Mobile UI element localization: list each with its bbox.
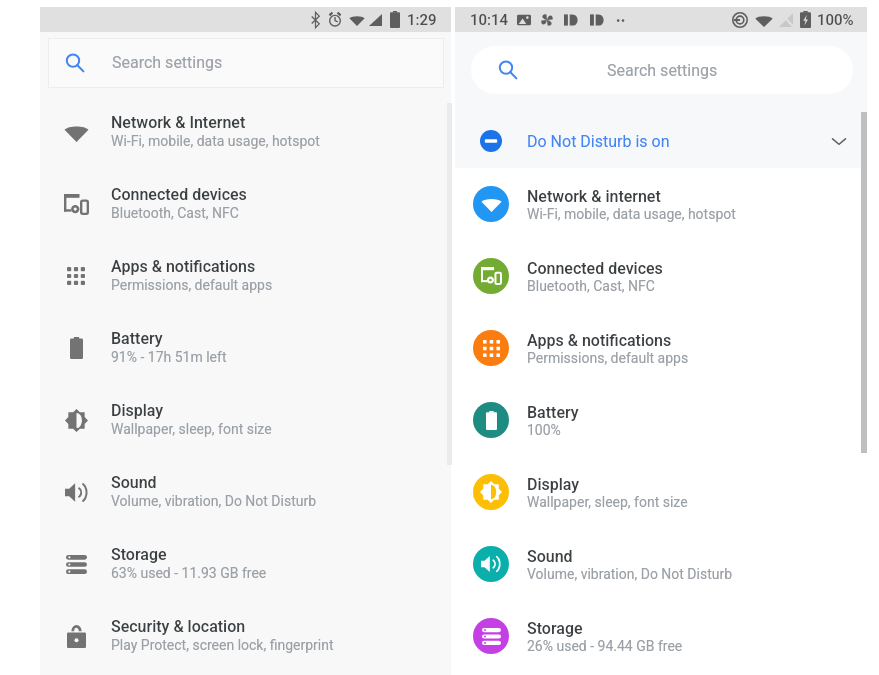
staticText: 100% — [527, 422, 561, 438]
button[interactable]: Battery — [40, 316, 451, 388]
button[interactable]: Apps & notifications — [455, 320, 867, 392]
staticText: 91% - 17h 51m left — [111, 349, 227, 365]
staticText: Bluetooth, Cast, NFC — [111, 205, 239, 221]
button[interactable]: Connected devices — [455, 248, 867, 320]
staticText: Battery — [527, 403, 579, 422]
staticText: 1:29 — [407, 11, 437, 29]
button[interactable]: Security & location — [40, 604, 451, 675]
staticText: Display — [111, 401, 164, 420]
staticText: Storage — [527, 619, 583, 638]
button[interactable]: Battery — [455, 392, 867, 464]
staticText: 63% used - 11.93 GB free — [111, 565, 267, 581]
staticText: Search settings — [607, 61, 718, 80]
staticText: Search settings — [112, 53, 223, 72]
staticText: 26% used - 94.44 GB free — [527, 638, 683, 654]
staticText: Apps & notifications — [111, 257, 256, 276]
staticText: 10:14 — [470, 11, 509, 29]
staticText: Permissions, default apps — [111, 277, 273, 293]
staticText: Play Protect, screen lock, fingerprint — [111, 637, 334, 653]
button[interactable]: Display — [455, 464, 867, 536]
staticText: Permissions, default apps — [527, 350, 689, 366]
button[interactable]: Search settings — [48, 38, 444, 88]
button[interactable]: Storage — [40, 532, 451, 604]
staticText: Sound — [527, 547, 573, 566]
staticText: Battery — [111, 329, 163, 348]
staticText: Display — [527, 475, 580, 494]
button[interactable]: Search settings — [471, 46, 853, 94]
staticText: Wi-Fi, mobile, data usage, hotspot — [111, 133, 320, 149]
button[interactable]: Apps & notifications — [40, 244, 451, 316]
staticText: Connected devices — [527, 259, 663, 278]
staticText: Sound — [111, 473, 157, 492]
staticText: Security & location — [111, 617, 246, 636]
staticText: Volume, vibration, Do Not Disturb — [527, 566, 733, 582]
staticText: Do Not Disturb is on — [527, 132, 670, 151]
staticText: Wi-Fi, mobile, data usage, hotspot — [527, 206, 736, 222]
button[interactable]: Network & Internet — [40, 100, 451, 172]
staticText: Network & internet — [527, 187, 661, 206]
staticText: Wallpaper, sleep, font size — [527, 494, 688, 510]
button[interactable]: Sound — [455, 536, 867, 608]
staticText: Network & Internet — [111, 113, 246, 132]
staticText: Bluetooth, Cast, NFC — [527, 278, 655, 294]
button[interactable]: Display — [40, 388, 451, 460]
staticText: Wallpaper, sleep, font size — [111, 421, 272, 437]
staticText: 100% — [817, 11, 854, 29]
button[interactable]: Do Not Disturb is on — [455, 118, 867, 164]
button[interactable]: Connected devices — [40, 172, 451, 244]
staticText: Storage — [111, 545, 167, 564]
staticText: Connected devices — [111, 185, 247, 204]
staticText: Volume, vibration, Do Not Disturb — [111, 493, 317, 509]
button[interactable]: Network & internet — [455, 176, 867, 248]
staticText: Apps & notifications — [527, 331, 672, 350]
button[interactable]: Sound — [40, 460, 451, 532]
button[interactable]: Storage — [455, 608, 867, 675]
